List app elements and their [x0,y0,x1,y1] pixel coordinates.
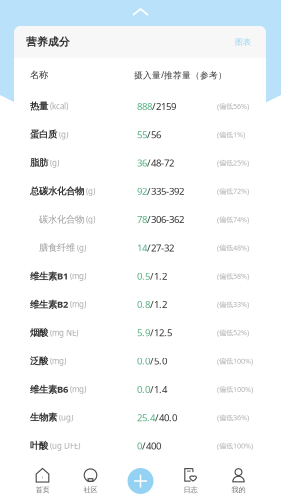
staticText: 78 [137,213,147,226]
staticText: /40.0 [155,411,177,424]
staticText: 日志 [183,485,197,494]
staticText: 泛酸 [30,355,48,367]
staticText: (g) [59,129,68,140]
staticText: 碳水化合物 [39,213,84,225]
staticText: 维生素B1 [30,270,68,282]
staticText: /400 [142,439,161,452]
staticText: 92 [137,184,147,198]
button[interactable]: 我的 [214,462,262,500]
staticText: 25.4 [137,411,155,424]
staticText: /1.2 [150,298,167,311]
button[interactable]: 日志 [166,462,214,500]
staticText: (偏低52%) [217,328,249,337]
staticText: (偏低74%) [217,214,249,224]
button[interactable]: 添加 [114,462,166,500]
staticText: 膳食纤维 [39,242,75,254]
staticText: /12.5 [150,326,172,339]
staticText: (偏低1%) [217,129,245,139]
staticText: 烟酸 [30,327,48,338]
staticText: 蛋白质 [30,129,57,140]
staticText: 维生素B6 [30,383,68,395]
staticText: 14 [137,241,147,254]
staticText: (偏低100%) [217,384,253,394]
staticText: (偏低36%) [217,412,249,422]
staticText: (偏低72%) [217,186,249,196]
staticText: (偏低100%) [217,441,253,451]
staticText: (g) [50,157,59,168]
staticText: 社区 [83,485,97,494]
staticText: 0.8 [137,298,150,311]
staticText: (mg) [50,355,66,366]
staticText: 脂肪 [30,157,48,169]
staticText: (偏低25%) [217,158,249,168]
staticText: 营养成分 [26,35,70,49]
staticText: 0 [137,439,142,452]
staticText: 0.0 [137,354,150,367]
staticText: 首页 [35,485,49,494]
staticText: /335-392 [147,184,184,198]
staticText: 图表 [235,37,251,47]
staticText: 名称 [30,69,48,81]
button[interactable]: 首页 [18,462,66,500]
staticText: (偏低33%) [217,299,249,309]
staticText: 888 [137,100,152,113]
staticText: 5.9 [137,326,150,339]
staticText: 摄入量/推荐量（参考） [134,69,227,81]
staticText: /48-72 [147,156,174,169]
staticText: (偏低48%) [217,243,249,252]
staticText: 0.0 [137,383,150,396]
staticText: (偏低58%) [217,271,249,281]
staticText: (kcal) [50,101,68,112]
staticText: /27-32 [147,241,174,254]
staticText: (mg) [70,270,86,281]
staticText: 叶酸 [30,440,48,452]
staticText: /2159 [152,100,176,113]
staticText: (g) [86,186,95,196]
button[interactable]: 社区 [66,462,114,500]
staticText: /1.2 [150,269,167,282]
button[interactable]: 图表 [225,30,251,54]
staticText: 热量 [30,100,48,112]
staticText: 36 [137,156,147,169]
staticText: (mg) [70,384,86,395]
staticText: (ug) [59,412,73,423]
staticText: (mg NE) [50,327,78,338]
staticText: (g) [77,242,86,253]
staticText: (mg) [70,299,86,310]
staticText: (ug DFE) [50,440,80,451]
staticText: (g) [86,214,95,225]
staticText: 55 [137,128,147,141]
staticText: /56 [147,128,161,141]
staticText: 生物素 [30,412,57,423]
staticText: (偏低100%) [217,356,253,366]
staticText: 维生素B2 [30,298,68,311]
staticText: /5.0 [150,354,167,367]
staticText: 我的 [231,485,245,494]
staticText: (偏低56%) [217,101,249,111]
staticText: /1.4 [150,383,167,396]
staticText: 0.5 [137,269,150,282]
staticText: 总碳水化合物 [30,185,84,197]
staticText: /306-362 [147,213,184,226]
